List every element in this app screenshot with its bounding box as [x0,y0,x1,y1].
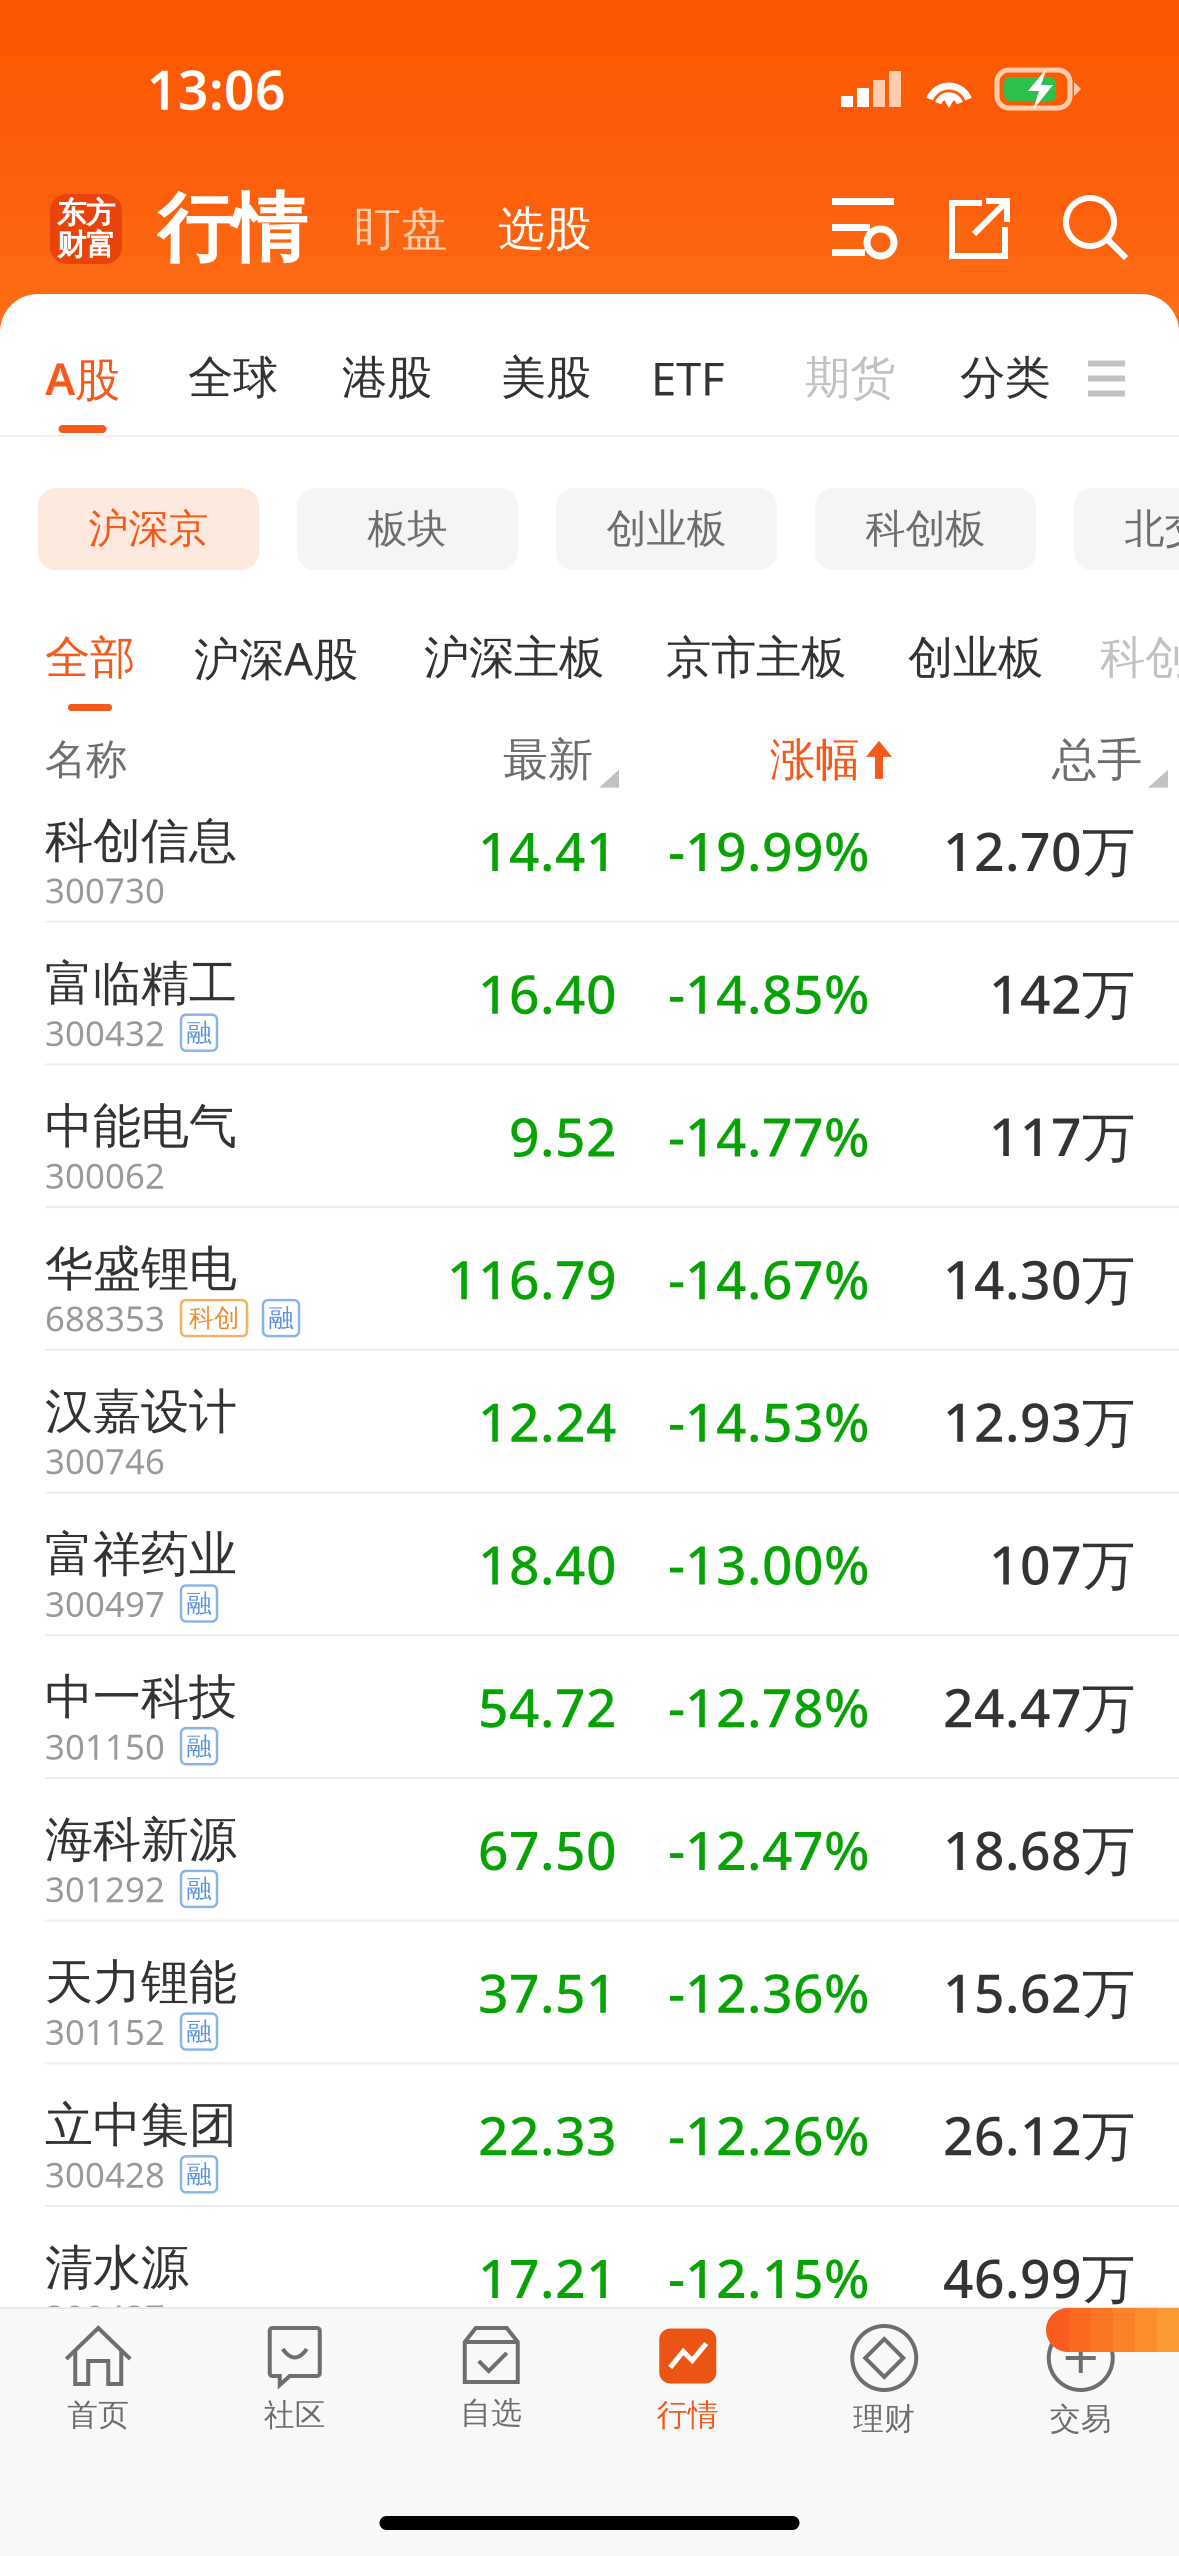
staticText: 总手 [1052,732,1142,788]
staticText: 300730 [45,867,165,913]
button[interactable]: 盯盘 [354,200,448,258]
button[interactable]: 创业板 [908,632,1043,711]
staticText: 67.50 [478,1814,617,1885]
staticText: 14.30万 [943,1243,1135,1314]
staticText: 东方 [57,195,115,231]
staticText: -13.00% [668,1528,869,1599]
button[interactable]: 板块 [297,488,518,570]
button[interactable]: 科创信息 [0,780,1179,921]
button[interactable]: 更多分类 [1088,360,1125,421]
staticText: 融 [186,1588,211,1619]
staticText: 创业板 [908,630,1043,686]
staticText: -12.36% [668,1956,869,2027]
staticText: 300428 [45,2151,165,2197]
staticText: 融 [186,1731,211,1762]
button[interactable]: ETF [651,349,725,433]
button[interactable]: 中一科技 [0,1636,1179,1777]
button[interactable]: 富临精工 [0,923,1179,1063]
staticText: 立中集团 [45,2096,237,2155]
staticText: -14.67% [668,1243,869,1314]
staticText: 16.40 [478,958,617,1028]
staticText: 688353 [45,1295,165,1341]
staticText: 华盛锂电 [45,1240,237,1299]
button[interactable]: 搜索 [1066,198,1128,260]
staticText: 14.41 [478,815,617,886]
staticText: 301150 [45,1723,165,1769]
staticText: 142万 [989,958,1135,1028]
staticText: 行情 [157,183,307,275]
button[interactable]: 沪深A股 [194,632,358,711]
button[interactable]: 北交所 [1074,488,1179,570]
staticText: 科创板 [1100,630,1179,686]
staticText: 分类 [960,350,1050,406]
button[interactable]: 行情 [589,2307,786,2487]
button[interactable]: 理财 [786,2307,982,2487]
staticText: 科创 [189,1302,239,1334]
staticText: 盯盘 [354,200,448,258]
button[interactable]: 华盛锂电 [0,1208,1179,1349]
staticText: 最新 [503,732,593,788]
staticText: 沪深京 [88,504,208,553]
staticText: 中一科技 [45,1668,237,1727]
staticText: 社区 [264,2396,326,2434]
staticText: 融 [186,2016,211,2047]
staticText: 116.79 [447,1243,617,1314]
button[interactable]: 期货 [805,349,895,433]
staticText: 301292 [45,1866,165,1912]
button[interactable]: 选股 [498,200,592,258]
staticText: 选股 [498,200,592,258]
staticText: -12.47% [668,1814,869,1885]
button[interactable]: 汉嘉设计 [0,1351,1179,1491]
staticText: 13:06 [147,54,286,124]
button[interactable]: 科创板 [1100,632,1179,711]
button[interactable]: 沪深京 [38,488,259,570]
staticText: 科创信息 [45,811,237,870]
staticText: 37.51 [478,1956,617,2027]
staticText: 300497 [45,1580,165,1626]
staticText: 全球 [188,350,278,406]
button[interactable]: 京市主板 [666,632,846,711]
button[interactable]: 自选 [393,2307,589,2487]
staticText: 清水源 [45,2238,189,2297]
button[interactable]: 天力锂能 [0,1922,1179,2062]
staticText: 17.21 [478,2242,617,2313]
button[interactable]: 沪深主板 [424,632,604,711]
staticText: 自选 [460,2394,522,2432]
button[interactable]: 社区 [196,2307,393,2487]
button[interactable]: 港股 [342,349,432,433]
staticText: 中能电气 [45,1097,237,1156]
staticText: -19.99% [668,815,869,886]
staticText: 港股 [342,350,432,406]
staticText: 26.12万 [943,2099,1135,2170]
button[interactable]: A股 [45,349,120,433]
staticText: 12.93万 [943,1386,1135,1456]
staticText: 沪深A股 [194,628,358,688]
button[interactable]: 全球 [188,349,278,433]
button[interactable]: 创业板 [556,488,777,570]
button[interactable]: 交易 [982,2307,1179,2487]
staticText: -14.85% [668,958,869,1028]
button[interactable]: 分享 [948,197,1010,261]
staticText: 创业板 [606,504,726,553]
staticText: 融 [186,1017,211,1048]
staticText: A股 [45,348,120,408]
button[interactable]: 海科新源 [0,1779,1179,1920]
button[interactable]: 富祥药业 [0,1493,1179,1634]
button[interactable]: 清水源 [0,2207,1179,2348]
staticText: -12.26% [668,2099,869,2170]
button[interactable]: 首页 [0,2307,196,2487]
button[interactable]: 科创板 [815,488,1036,570]
button[interactable]: 立中集团 [0,2064,1179,2205]
staticText: 18.68万 [943,1814,1135,1885]
button[interactable]: 中能电气 [0,1065,1179,1206]
button[interactable]: 设置 [832,198,894,260]
button[interactable]: 分类 [960,349,1050,433]
staticText: 科创板 [865,504,985,553]
staticText: 期货 [805,350,895,406]
staticText: 海科新源 [45,1810,237,1869]
button[interactable]: 美股 [501,349,591,433]
staticText: 京市主板 [666,630,846,686]
staticText: 117万 [989,1100,1135,1171]
staticText: -14.77% [668,1100,869,1171]
button[interactable]: 全部 [45,632,135,711]
